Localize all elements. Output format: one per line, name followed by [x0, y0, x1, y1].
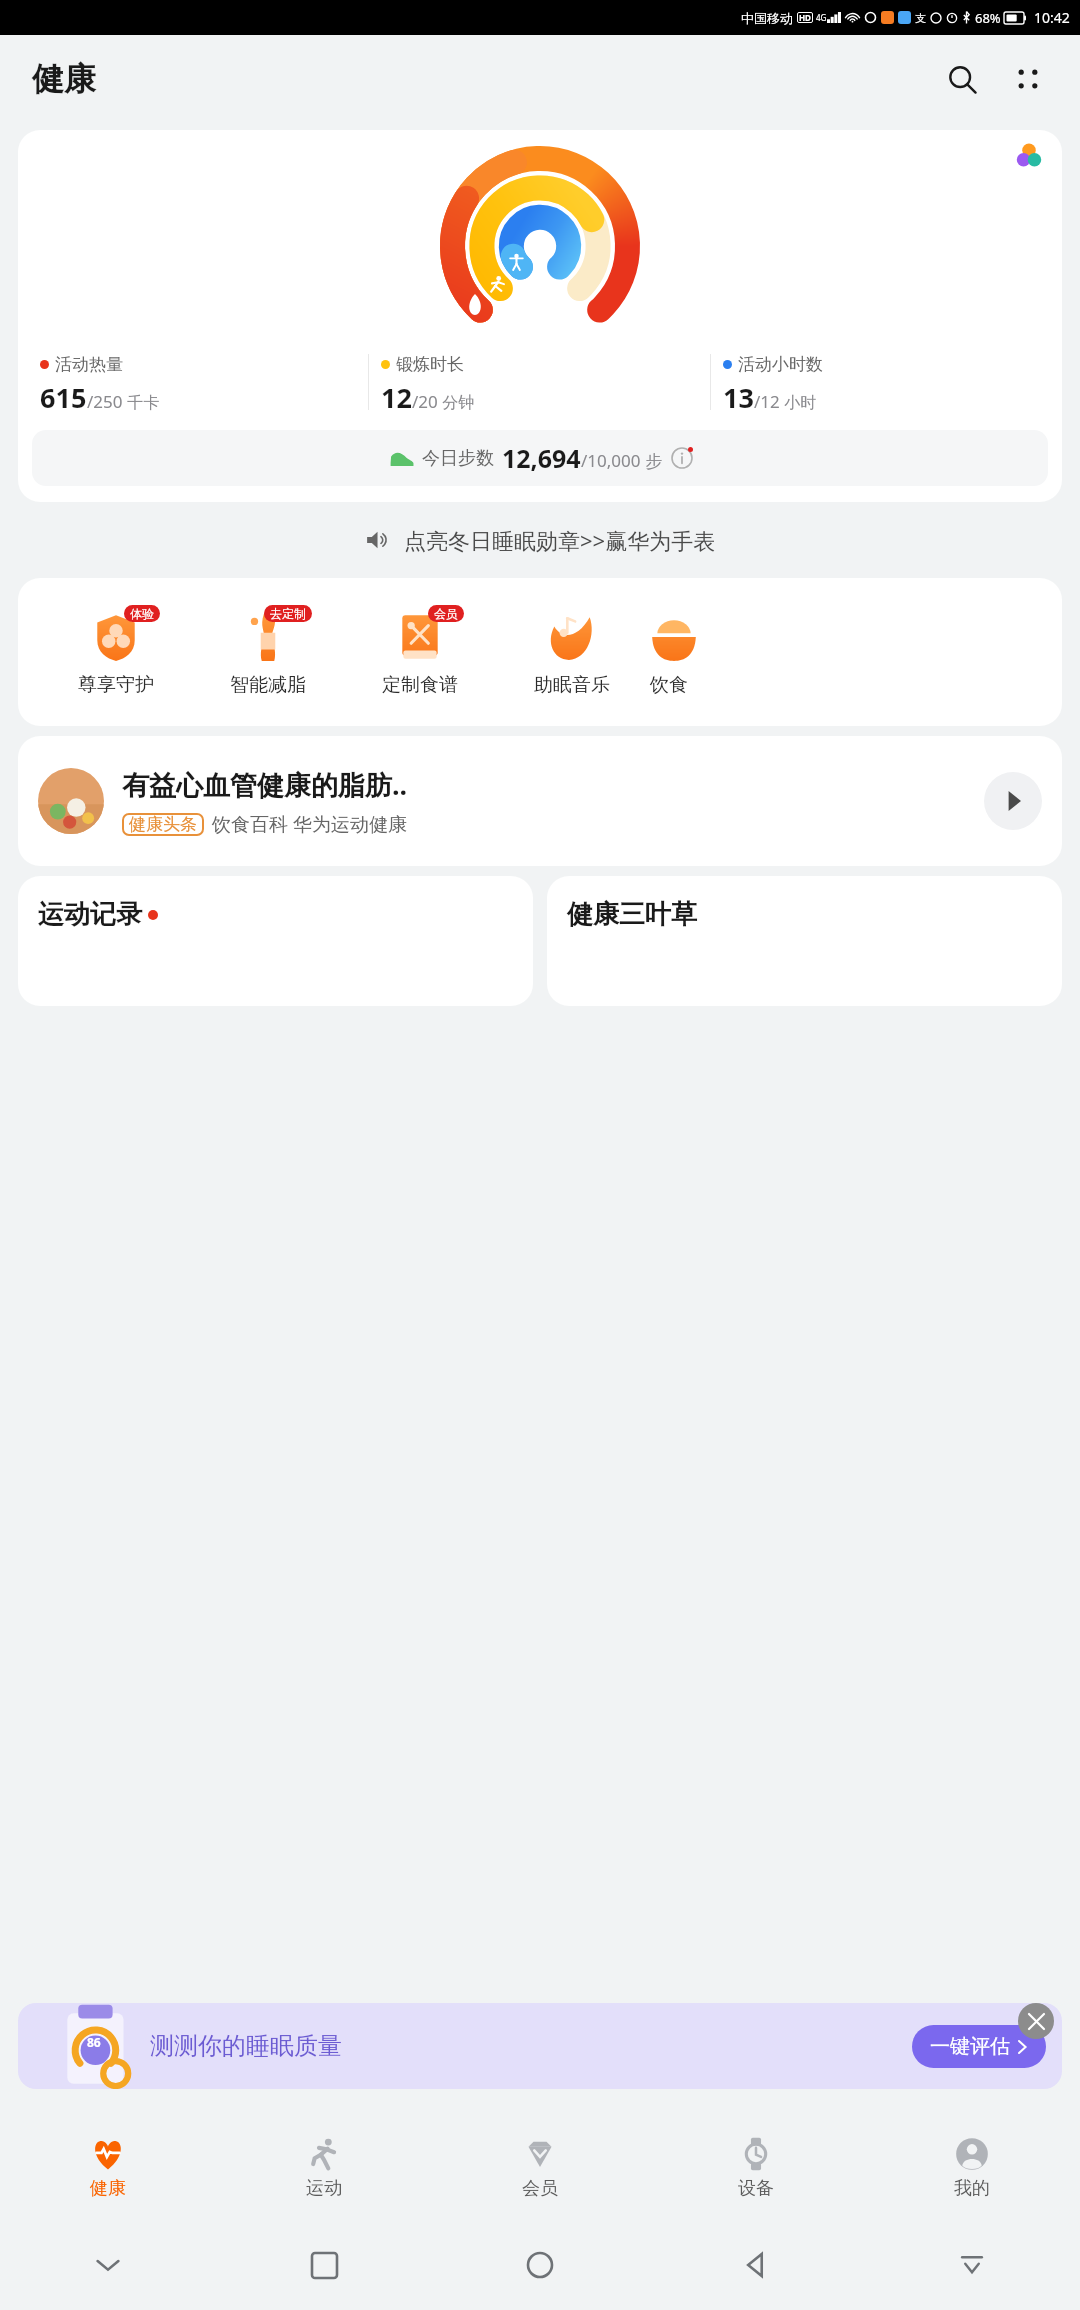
staticText: 今日步数	[422, 447, 494, 470]
button[interactable]: 活动热量	[18, 130, 1062, 502]
button[interactable]: 会员	[344, 607, 496, 697]
button[interactable]: 健康三叶草	[547, 876, 1062, 1006]
staticText: /10,000	[581, 449, 641, 472]
staticText: 12	[381, 379, 412, 416]
staticText: 智能减脂	[230, 673, 306, 697]
staticText: 分钟	[438, 391, 475, 413]
staticText: /20	[412, 390, 438, 413]
button[interactable]: More options	[1000, 51, 1056, 107]
staticText: 步	[641, 449, 663, 472]
staticText: 有益心血管健康的脂肪..	[122, 766, 408, 803]
button[interactable]: Scroll down	[864, 2220, 1080, 2310]
staticText: 健康	[32, 59, 96, 99]
button[interactable]: Search	[934, 51, 990, 107]
staticText: 我的	[954, 2177, 990, 2200]
button[interactable]: 饮食	[648, 607, 748, 697]
staticText: 饮食	[650, 673, 688, 697]
button[interactable]: Health services	[998, 134, 1060, 176]
button[interactable]: 设备	[648, 2115, 864, 2220]
staticText: 10:42	[1034, 8, 1070, 27]
staticText: 一键评估	[930, 2034, 1010, 2059]
staticText: 中国移动	[741, 10, 793, 26]
staticText: 去定制	[270, 606, 306, 621]
staticText: 活动小时数	[738, 354, 823, 375]
staticText: 13	[723, 379, 754, 416]
staticText: 4G	[816, 12, 827, 23]
staticText: 支	[915, 11, 926, 25]
staticText: /12	[754, 390, 780, 413]
staticText: 健康	[90, 2177, 126, 2200]
button[interactable]: 今日步数	[32, 430, 1048, 486]
staticText: HD	[799, 12, 811, 23]
staticText: 尊享守护	[78, 673, 154, 697]
staticText: 运动	[306, 2177, 342, 2200]
button[interactable]: 体验	[40, 607, 192, 697]
button[interactable]: 一键评估	[912, 2025, 1046, 2068]
button[interactable]: 点亮冬日睡眠勋章>>赢华为手表	[0, 512, 1080, 568]
staticText: 助眠音乐	[534, 673, 610, 697]
staticText: 12,694	[502, 441, 581, 475]
staticText: 健康头条	[129, 814, 197, 835]
staticText: 会员	[434, 606, 458, 621]
button[interactable]: Recents	[216, 2220, 432, 2310]
button[interactable]: Play	[984, 772, 1042, 830]
button[interactable]: Home	[432, 2220, 648, 2310]
staticText: 活动热量	[55, 354, 123, 375]
button[interactable]: 助眠音乐	[496, 607, 648, 697]
staticText: 68%	[975, 9, 1001, 27]
staticText: /250	[87, 390, 123, 413]
button[interactable]: 会员	[432, 2115, 648, 2220]
staticText: 点亮冬日睡眠勋章>>赢华为手表	[404, 525, 716, 555]
staticText: 测测你的睡眠质量	[150, 2031, 342, 2061]
button[interactable]: 去定制	[192, 607, 344, 697]
button[interactable]: Hide keyboard	[0, 2220, 216, 2310]
button[interactable]: 有益心血管健康的脂肪..	[18, 736, 1062, 866]
button[interactable]: 86	[18, 2003, 1062, 2089]
button[interactable]: 运动记录	[18, 876, 533, 1006]
staticText: 千卡	[123, 391, 160, 413]
staticText: 锻炼时长	[396, 354, 464, 375]
button[interactable]: 运动	[216, 2115, 432, 2220]
button[interactable]: 我的	[864, 2115, 1080, 2220]
staticText: 健康三叶草	[567, 898, 697, 931]
button[interactable]: Close ad	[1018, 2003, 1054, 2039]
staticText: 运动记录	[38, 898, 142, 931]
staticText: 饮食百科 华为运动健康	[212, 811, 407, 837]
staticText: 小时	[780, 391, 817, 413]
staticText: 615	[40, 379, 87, 416]
staticText: 会员	[522, 2177, 558, 2200]
staticText: 定制食谱	[382, 673, 458, 697]
staticText: 86	[87, 2034, 101, 2050]
staticText: 设备	[738, 2177, 774, 2200]
button[interactable]: Back	[648, 2220, 864, 2310]
staticText: 体验	[130, 606, 154, 621]
button[interactable]: 健康	[0, 2115, 216, 2220]
